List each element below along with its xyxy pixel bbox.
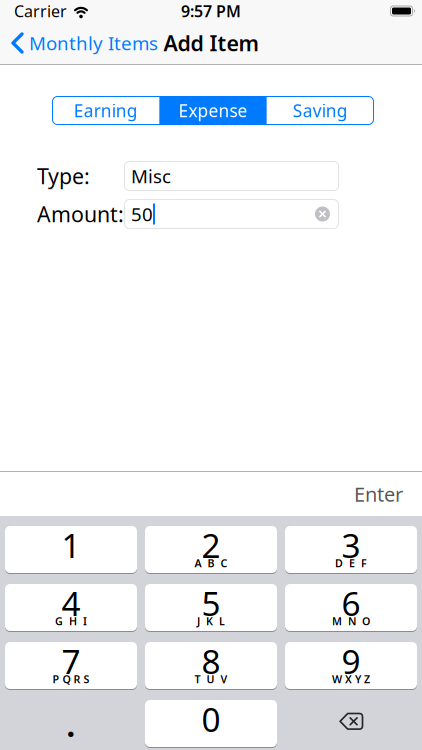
staticText: 8 — [201, 639, 220, 683]
staticText: 50 — [131, 202, 153, 226]
button[interactable]: Monthly Items — [11, 31, 158, 55]
staticText: Amount: — [37, 200, 124, 228]
staticText: 9 — [341, 639, 360, 683]
staticText: 4 — [61, 581, 80, 625]
button[interactable]: 8 — [145, 642, 277, 689]
button[interactable]: Expense — [159, 96, 267, 125]
staticText: T U V — [194, 672, 227, 686]
staticText: Expense — [178, 99, 247, 122]
staticText: . — [66, 700, 76, 746]
button[interactable]: Earning — [52, 96, 159, 125]
staticText: Type: — [37, 162, 90, 190]
staticText: G H I — [55, 614, 87, 628]
staticText: 9:57 PM — [181, 0, 241, 22]
button[interactable]: 6 — [285, 584, 417, 631]
button[interactable]: 50 — [124, 199, 339, 229]
staticText: Add Item — [163, 29, 258, 57]
button[interactable]: 2 — [145, 526, 277, 573]
button[interactable]: Enter — [354, 481, 403, 507]
button[interactable]: Delete — [285, 700, 417, 747]
staticText: Misc — [131, 164, 171, 188]
button[interactable]: 1 — [5, 526, 137, 573]
staticText: 0 — [201, 697, 220, 741]
staticText: 5 — [201, 581, 220, 625]
staticText: 7 — [61, 639, 80, 683]
staticText: 1 — [61, 523, 80, 567]
staticText: 2 — [201, 523, 220, 567]
staticText: Enter — [354, 481, 403, 507]
staticText: Saving — [293, 99, 348, 122]
button[interactable]: 9 — [285, 642, 417, 689]
staticText: D E F — [335, 556, 367, 570]
staticText: Earning — [74, 99, 138, 122]
staticText: J K L — [197, 614, 225, 628]
button[interactable]: 3 — [285, 526, 417, 573]
button[interactable]: 7 — [5, 642, 137, 689]
button[interactable]: Saving — [267, 96, 374, 125]
button[interactable]: 5 — [145, 584, 277, 631]
button[interactable]: Misc — [124, 161, 339, 191]
staticText: W X Y Z — [332, 672, 370, 686]
staticText: A B C — [194, 556, 227, 570]
staticText: 6 — [341, 581, 360, 625]
staticText: 3 — [341, 523, 360, 567]
button[interactable]: Decimal point — [5, 700, 137, 747]
staticText: Carrier — [14, 0, 67, 22]
staticText: M N O — [332, 614, 370, 628]
button[interactable]: 4 — [5, 584, 137, 631]
button[interactable]: 0 — [145, 700, 277, 747]
staticText: Monthly Items — [29, 31, 158, 55]
button[interactable]: Clear text — [315, 206, 330, 221]
staticText: P Q R S — [52, 672, 89, 686]
